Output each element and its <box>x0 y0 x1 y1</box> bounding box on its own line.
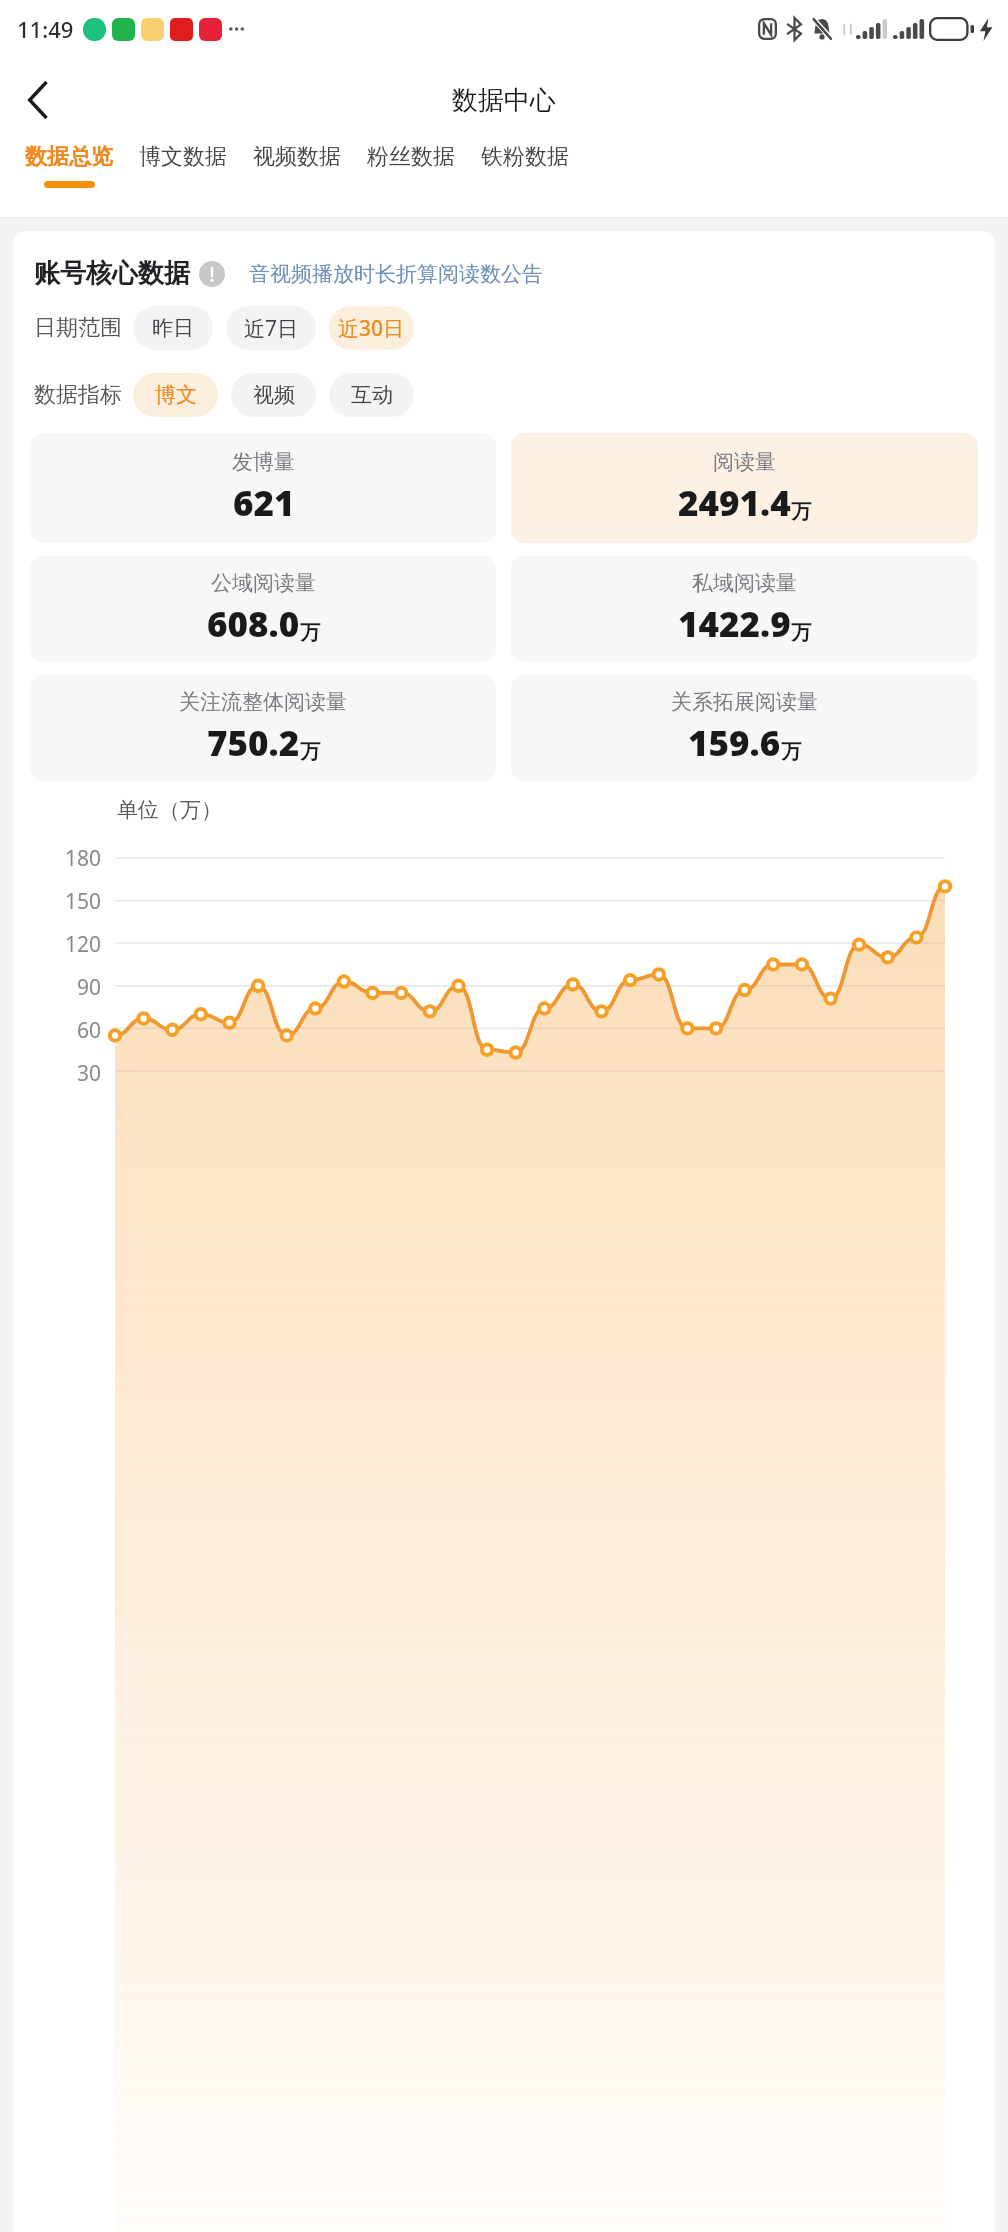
staticText: 数据指标 <box>34 381 122 409</box>
staticText: 博文数据 <box>139 143 227 171</box>
staticText: 621 <box>233 479 295 527</box>
staticText: 万 <box>791 499 811 524</box>
staticText: 铁粉数据 <box>481 143 569 171</box>
staticText: 90 <box>13 973 101 1002</box>
staticText: 180 <box>13 844 101 873</box>
staticText: 日期范围 <box>34 314 122 342</box>
staticText: 1422.9 <box>678 600 791 648</box>
staticText: 粉丝数据 <box>367 143 455 171</box>
button[interactable]: 返回 <box>6 68 70 132</box>
button[interactable]: 关注流整体阅读量 <box>30 675 496 781</box>
staticText: 账号核心数据 <box>34 257 190 290</box>
button[interactable]: 近30日 <box>329 306 414 350</box>
staticText: 公域阅读量 <box>211 570 316 596</box>
staticText: 2491.4 <box>678 479 791 527</box>
button[interactable]: 铁粉数据 <box>481 143 569 181</box>
staticText: 互动 <box>351 382 393 408</box>
staticText: 音视频播放时长折算阅读数公告 <box>249 261 543 287</box>
staticText: 发博量 <box>232 449 295 475</box>
staticText: 159.6 <box>688 719 781 767</box>
staticText: 视频数据 <box>253 143 341 171</box>
staticText: 150 <box>13 887 101 916</box>
button[interactable]: 博文 <box>133 373 218 417</box>
button[interactable]: 阅读量 <box>511 433 978 543</box>
button[interactable]: 粉丝数据 <box>367 143 455 181</box>
staticText: 数据总览 <box>25 143 113 171</box>
staticText: 博文 <box>155 382 197 408</box>
button[interactable]: 公域阅读量 <box>30 556 496 662</box>
staticText: 单位（万） <box>117 797 222 823</box>
button[interactable]: 私域阅读量 <box>511 556 978 662</box>
staticText: 近7日 <box>244 314 299 343</box>
button[interactable]: 数据总览 <box>25 143 113 188</box>
staticText: 120 <box>13 930 101 959</box>
staticText: 近30日 <box>338 314 405 343</box>
staticText: 数据中心 <box>452 84 556 117</box>
button[interactable]: 博文数据 <box>139 143 227 181</box>
staticText: 关注流整体阅读量 <box>179 689 347 715</box>
staticText: 万 <box>300 620 320 645</box>
staticText: 60 <box>13 1016 101 1045</box>
button[interactable]: 近7日 <box>226 306 316 350</box>
staticText: 608.0 <box>207 600 300 648</box>
staticText: 30 <box>13 1059 101 1088</box>
button[interactable]: 视频数据 <box>253 143 341 181</box>
staticText: 750.2 <box>207 719 300 767</box>
button[interactable]: 音视频播放时长折算阅读数公告 <box>249 261 543 287</box>
staticText: 万 <box>791 620 811 645</box>
staticText: 阅读量 <box>713 449 776 475</box>
staticText: 视频 <box>253 382 295 408</box>
staticText: 11:49 <box>17 14 74 44</box>
staticText: 昨日 <box>152 315 194 341</box>
button[interactable]: 昨日 <box>133 306 213 350</box>
staticText: 万 <box>781 739 801 764</box>
button[interactable]: 关系拓展阅读量 <box>511 675 978 781</box>
button[interactable]: 视频 <box>231 373 316 417</box>
staticText: 私域阅读量 <box>692 570 797 596</box>
staticText: 万 <box>300 739 320 764</box>
button[interactable]: 发博量 <box>30 433 496 543</box>
button[interactable]: 说明 <box>199 261 225 287</box>
staticText: 关系拓展阅读量 <box>671 689 818 715</box>
button[interactable]: 互动 <box>329 373 414 417</box>
